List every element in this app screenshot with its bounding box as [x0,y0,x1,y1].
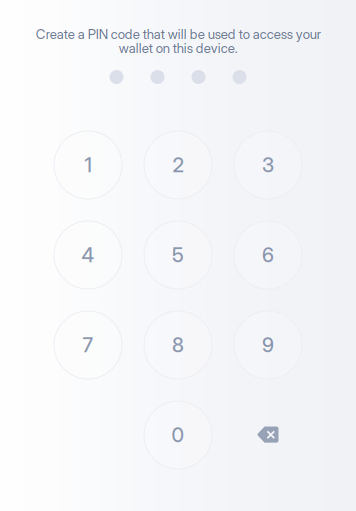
staticText: 0 [171,423,184,447]
staticText: 3 [262,153,274,177]
staticText: 7 [82,333,93,357]
button[interactable]: 4 [54,221,122,289]
button[interactable]: 5 [144,221,212,289]
button[interactable]: Delete [234,401,302,469]
button[interactable]: 7 [54,311,122,379]
staticText: 9 [262,333,274,357]
button[interactable]: 9 [234,311,302,379]
staticText: 2 [172,153,183,177]
staticText: 6 [262,243,274,267]
staticText: 8 [172,333,184,357]
button[interactable]: 1 [54,131,122,199]
staticText: Create a PIN code that will be used to a… [35,26,320,56]
staticText: 5 [172,243,184,267]
button[interactable]: 8 [144,311,212,379]
staticText: 1 [84,153,91,177]
button[interactable]: 3 [234,131,302,199]
staticText: 4 [81,243,94,267]
button[interactable]: 2 [144,131,212,199]
button[interactable]: 6 [234,221,302,289]
button[interactable]: 0 [144,401,212,469]
